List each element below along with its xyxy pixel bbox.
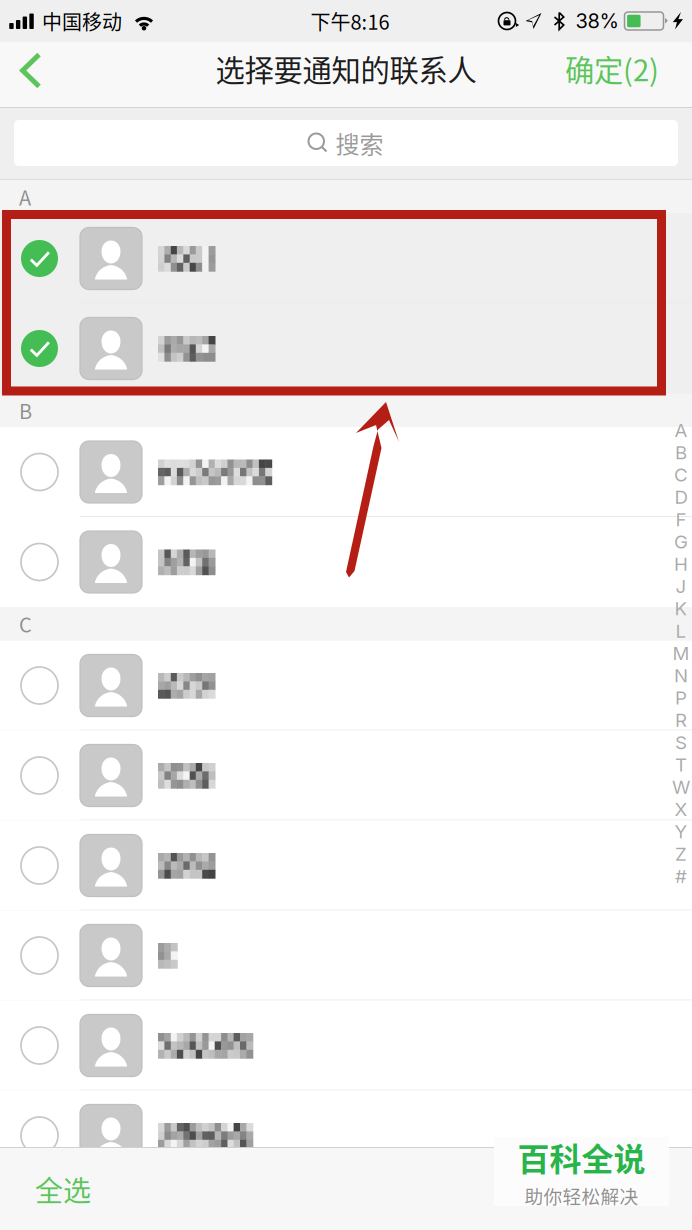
staticText: 下午8:16 — [310, 6, 389, 35]
button[interactable] — [0, 1000, 692, 1090]
staticText: Z — [675, 843, 687, 865]
button[interactable]: 确定(2) — [532, 42, 692, 107]
staticText: K — [674, 597, 687, 620]
button[interactable] — [0, 427, 692, 517]
staticText: X — [674, 798, 687, 821]
button[interactable]: 全选 — [0, 1148, 91, 1230]
staticText: J — [675, 575, 686, 598]
staticText: A — [19, 182, 31, 211]
staticText: B — [675, 441, 687, 464]
button[interactable] — [0, 910, 692, 1000]
staticText: P — [675, 686, 687, 709]
staticText: 百科全说 — [517, 1134, 645, 1180]
staticText: G — [674, 530, 688, 553]
staticText: T — [675, 753, 687, 776]
staticText: Y — [674, 820, 687, 843]
staticText: R — [675, 709, 687, 731]
button[interactable] — [0, 640, 692, 730]
staticText: 确定(2) — [565, 47, 659, 90]
button[interactable]: 返回 — [0, 42, 62, 107]
staticText: M — [672, 642, 689, 664]
staticText: C — [19, 609, 32, 638]
staticText: 全选 — [35, 1169, 91, 1209]
staticText: N — [674, 664, 688, 687]
button[interactable]: 搜索 — [14, 120, 678, 166]
button[interactable] — [0, 1090, 692, 1180]
staticText: D — [674, 486, 687, 508]
button[interactable] — [0, 213, 692, 303]
staticText: 选择要通知的联系人 — [215, 47, 476, 90]
staticText: # — [675, 865, 687, 887]
staticText: S — [675, 731, 687, 754]
staticText: 38% — [575, 9, 618, 33]
button[interactable] — [0, 730, 692, 820]
staticText: 助你轻松解决 — [524, 1182, 638, 1209]
staticText: B — [19, 396, 32, 425]
staticText: 搜索 — [335, 126, 383, 160]
staticText: F — [675, 508, 686, 531]
staticText: H — [674, 553, 688, 575]
button[interactable] — [0, 517, 692, 607]
staticText: W — [672, 776, 690, 798]
staticText: A — [674, 419, 687, 441]
staticText: C — [674, 463, 688, 486]
button[interactable] — [0, 303, 692, 393]
staticText: 中国移动 — [42, 6, 122, 35]
button[interactable] — [0, 820, 692, 910]
staticText: L — [675, 620, 686, 642]
